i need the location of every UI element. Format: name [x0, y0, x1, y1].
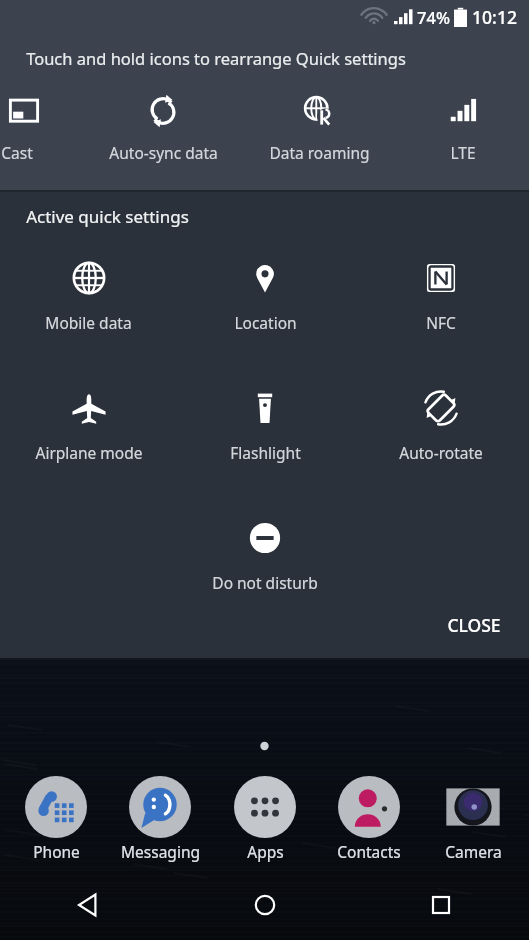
- staticText: Auto-rotate: [399, 442, 483, 463]
- button[interactable]: CLOSE: [419, 603, 529, 647]
- staticText: NFC: [426, 312, 456, 333]
- staticText: Cast: [1, 142, 33, 163]
- button[interactable]: Camera: [425, 776, 521, 862]
- button[interactable]: LTE: [397, 82, 529, 180]
- button[interactable]: Contacts: [321, 776, 417, 862]
- button[interactable]: Location: [177, 240, 353, 370]
- button[interactable]: Home: [177, 870, 353, 940]
- button[interactable]: Airplane mode: [0, 370, 177, 500]
- staticText: Touch and hold icons to rearrange Quick …: [26, 47, 406, 69]
- staticText: 74%: [417, 6, 450, 28]
- button[interactable]: Mobile data: [0, 240, 177, 370]
- staticText: Contacts: [337, 841, 401, 862]
- button[interactable]: Back: [0, 870, 177, 940]
- staticText: Location: [234, 312, 297, 333]
- staticText: Active quick settings: [26, 205, 189, 228]
- button[interactable]: Auto-rotate: [353, 370, 529, 500]
- button[interactable]: Flashlight: [177, 370, 353, 500]
- staticText: Phone: [33, 841, 80, 862]
- button[interactable]: Do not disturb: [177, 500, 353, 600]
- staticText: Camera: [445, 841, 502, 862]
- staticText: 10:12: [472, 5, 517, 29]
- staticText: Flashlight: [230, 442, 301, 463]
- staticText: Apps: [247, 841, 284, 862]
- button[interactable]: Auto-sync data: [85, 82, 241, 180]
- button[interactable]: Apps: [217, 776, 313, 862]
- staticText: Do not disturb: [212, 572, 318, 593]
- staticText: Airplane mode: [35, 442, 143, 463]
- button[interactable]: Phone: [8, 776, 104, 862]
- button[interactable]: Messaging: [112, 776, 208, 862]
- staticText: LTE: [450, 142, 476, 163]
- button[interactable]: Recents: [353, 870, 529, 940]
- staticText: Messaging: [121, 841, 200, 862]
- staticText: Auto-sync data: [109, 142, 218, 163]
- staticText: CLOSE: [447, 613, 501, 637]
- button[interactable]: NFC: [353, 240, 529, 370]
- staticText: Mobile data: [45, 312, 132, 333]
- button[interactable]: Data roaming: [241, 82, 397, 180]
- staticText: Data roaming: [269, 142, 370, 163]
- button[interactable]: Cast: [0, 82, 85, 180]
